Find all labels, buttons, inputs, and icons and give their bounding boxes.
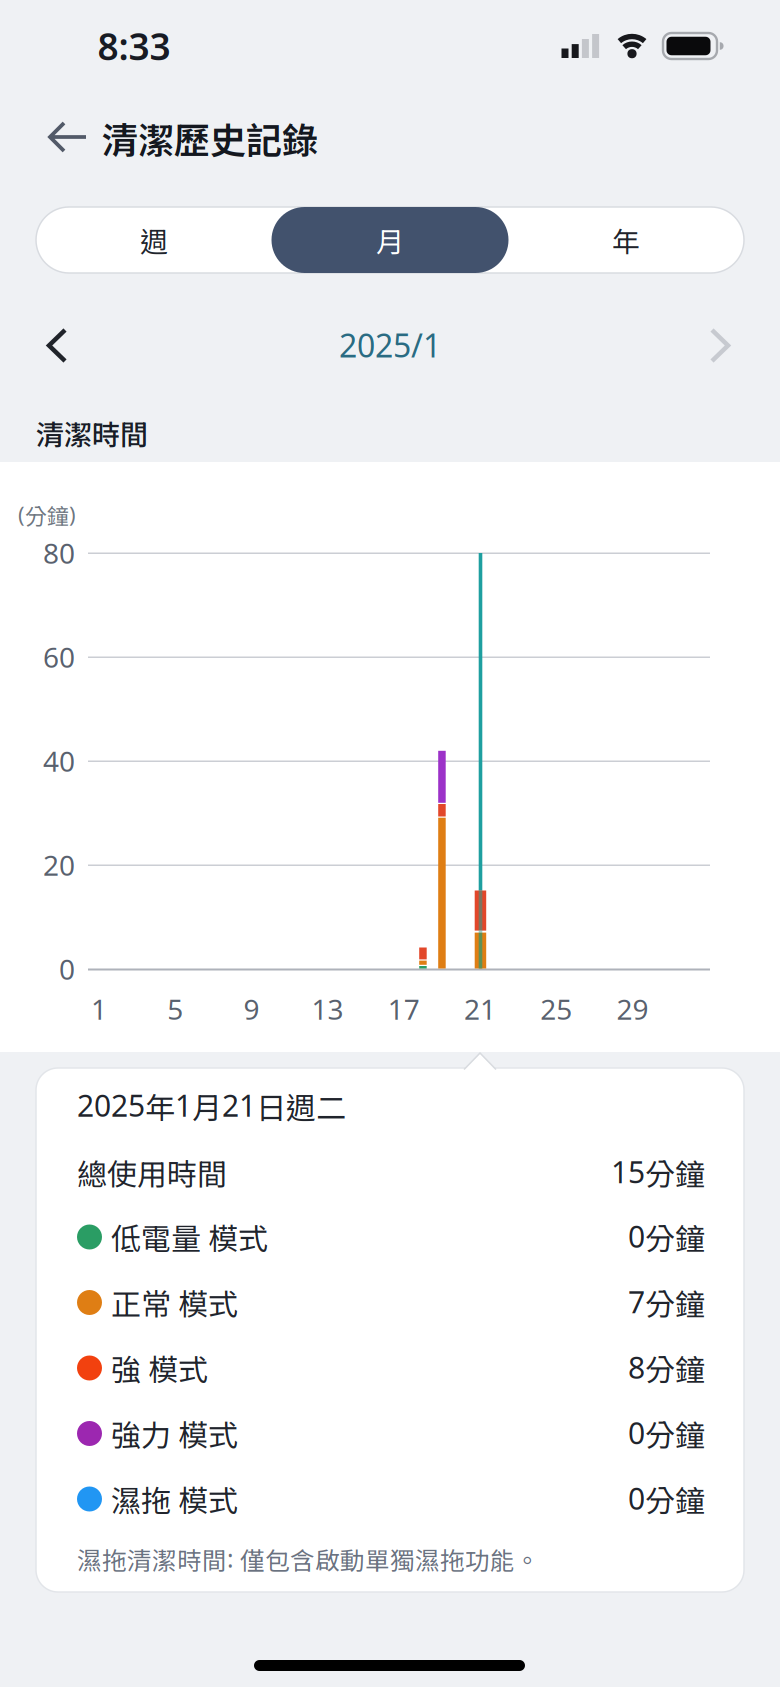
- staticText: 13: [312, 990, 344, 1028]
- staticText: 40: [43, 742, 75, 780]
- staticText: 20: [43, 846, 75, 884]
- staticText: 清潔時間: [36, 413, 148, 453]
- staticText: 0分鐘: [628, 1215, 705, 1259]
- staticText: 8:33: [97, 21, 170, 71]
- staticText: 2025年1月21日週二: [77, 1084, 346, 1128]
- staticText: 29: [616, 990, 648, 1028]
- staticText: 80: [43, 534, 75, 572]
- button[interactable]: 月: [271, 207, 508, 273]
- staticText: 週: [140, 220, 168, 260]
- staticText: 7分鐘: [628, 1281, 705, 1324]
- staticText: 8分鐘: [628, 1346, 705, 1390]
- staticText: 總使用時間: [77, 1151, 227, 1194]
- button[interactable]: [45, 115, 89, 159]
- staticText: 0分鐘: [628, 1412, 705, 1455]
- staticText: 濕拖 模式: [111, 1477, 238, 1521]
- staticText: 17: [388, 990, 420, 1028]
- staticText: 25: [540, 990, 572, 1028]
- staticText: 強力 模式: [111, 1412, 238, 1455]
- button[interactable]: 年: [526, 207, 726, 273]
- staticText: 0: [59, 950, 75, 988]
- button[interactable]: [695, 323, 739, 367]
- staticText: 2025/1: [339, 323, 441, 367]
- staticText: 低電量 模式: [111, 1215, 268, 1259]
- staticText: 清潔歷史記錄: [102, 112, 318, 164]
- button[interactable]: [38, 323, 82, 367]
- staticText: 5: [167, 990, 183, 1028]
- staticText: 0分鐘: [628, 1477, 705, 1521]
- staticText: 21: [464, 990, 496, 1028]
- staticText: 1: [91, 990, 107, 1028]
- staticText: 年: [612, 220, 640, 260]
- staticText: 15分鐘: [611, 1151, 705, 1194]
- button[interactable]: 週: [54, 207, 254, 273]
- staticText: 強 模式: [111, 1346, 208, 1390]
- staticText: 濕拖清潔時間: 僅包含啟動單獨濕拖功能。: [77, 1541, 540, 1577]
- staticText: 9: [243, 990, 259, 1028]
- staticText: (分鐘): [18, 499, 76, 531]
- staticText: 60: [43, 638, 75, 676]
- staticText: 正常 模式: [111, 1281, 238, 1324]
- staticText: 月: [376, 220, 404, 260]
